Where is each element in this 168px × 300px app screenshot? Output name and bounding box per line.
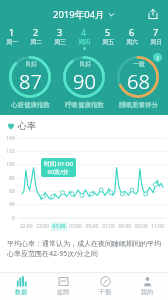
staticText: 一般 xyxy=(133,60,145,68)
staticText: 周四 xyxy=(78,38,90,46)
staticText: 监测 xyxy=(57,288,69,296)
staticText: 周三 xyxy=(54,38,66,46)
staticText: 平均心率：通常认为，成人在夜间睡眠期间的平均心率应范围在42-95次/分之间 xyxy=(7,239,161,258)
staticText: 周六 xyxy=(126,38,138,46)
button[interactable]: 数据 xyxy=(0,272,42,300)
staticText: 良好 xyxy=(25,60,37,68)
staticText: i xyxy=(157,54,159,62)
button[interactable]: 一般 xyxy=(111,53,165,109)
staticText: 1 xyxy=(9,26,15,38)
staticText: 周二 xyxy=(30,38,42,46)
staticText: 心率 xyxy=(18,120,36,131)
staticText: 数据 xyxy=(15,288,27,296)
staticText: 良好 xyxy=(79,60,91,68)
button[interactable]: 2019年04月 xyxy=(53,8,115,21)
button[interactable]: 4 xyxy=(72,26,96,50)
button[interactable]: 干预 xyxy=(84,272,126,300)
staticText: 呼吸健康指数 xyxy=(65,101,104,109)
staticText: 6 xyxy=(129,26,135,38)
staticText: 2 xyxy=(33,26,39,38)
button[interactable]: 良好 xyxy=(3,53,57,109)
button[interactable]: Info xyxy=(153,53,162,62)
staticText: 3 xyxy=(57,26,63,38)
button[interactable]: Share xyxy=(145,6,161,22)
staticText: 周日 xyxy=(150,38,162,46)
staticText: 7 xyxy=(153,26,159,38)
staticText: 5 xyxy=(105,26,111,38)
staticText: 87 xyxy=(19,68,42,95)
staticText: 2019年04月 xyxy=(53,8,105,21)
staticText: 68 xyxy=(127,68,150,95)
staticText: 心脏健康指数 xyxy=(11,101,50,109)
staticText: 我的 xyxy=(141,288,153,296)
button[interactable]: 6 xyxy=(120,26,144,50)
button[interactable]: 7 xyxy=(144,26,168,50)
button[interactable]: 良好 xyxy=(57,53,111,109)
staticText: 周一 xyxy=(6,38,18,46)
button[interactable]: 5 xyxy=(96,26,120,50)
staticText: 4 xyxy=(81,26,87,38)
button[interactable]: 我的 xyxy=(126,272,168,300)
staticText: 周五 xyxy=(102,38,114,46)
staticText: 干预 xyxy=(99,288,111,296)
button[interactable]: 3 xyxy=(48,26,72,50)
button[interactable]: 1 xyxy=(0,26,24,50)
button[interactable]: 2 xyxy=(24,26,48,50)
staticText: 睡眠质量得分 xyxy=(119,101,158,109)
staticText: 90 xyxy=(73,68,96,95)
button[interactable]: 监测 xyxy=(42,272,84,300)
